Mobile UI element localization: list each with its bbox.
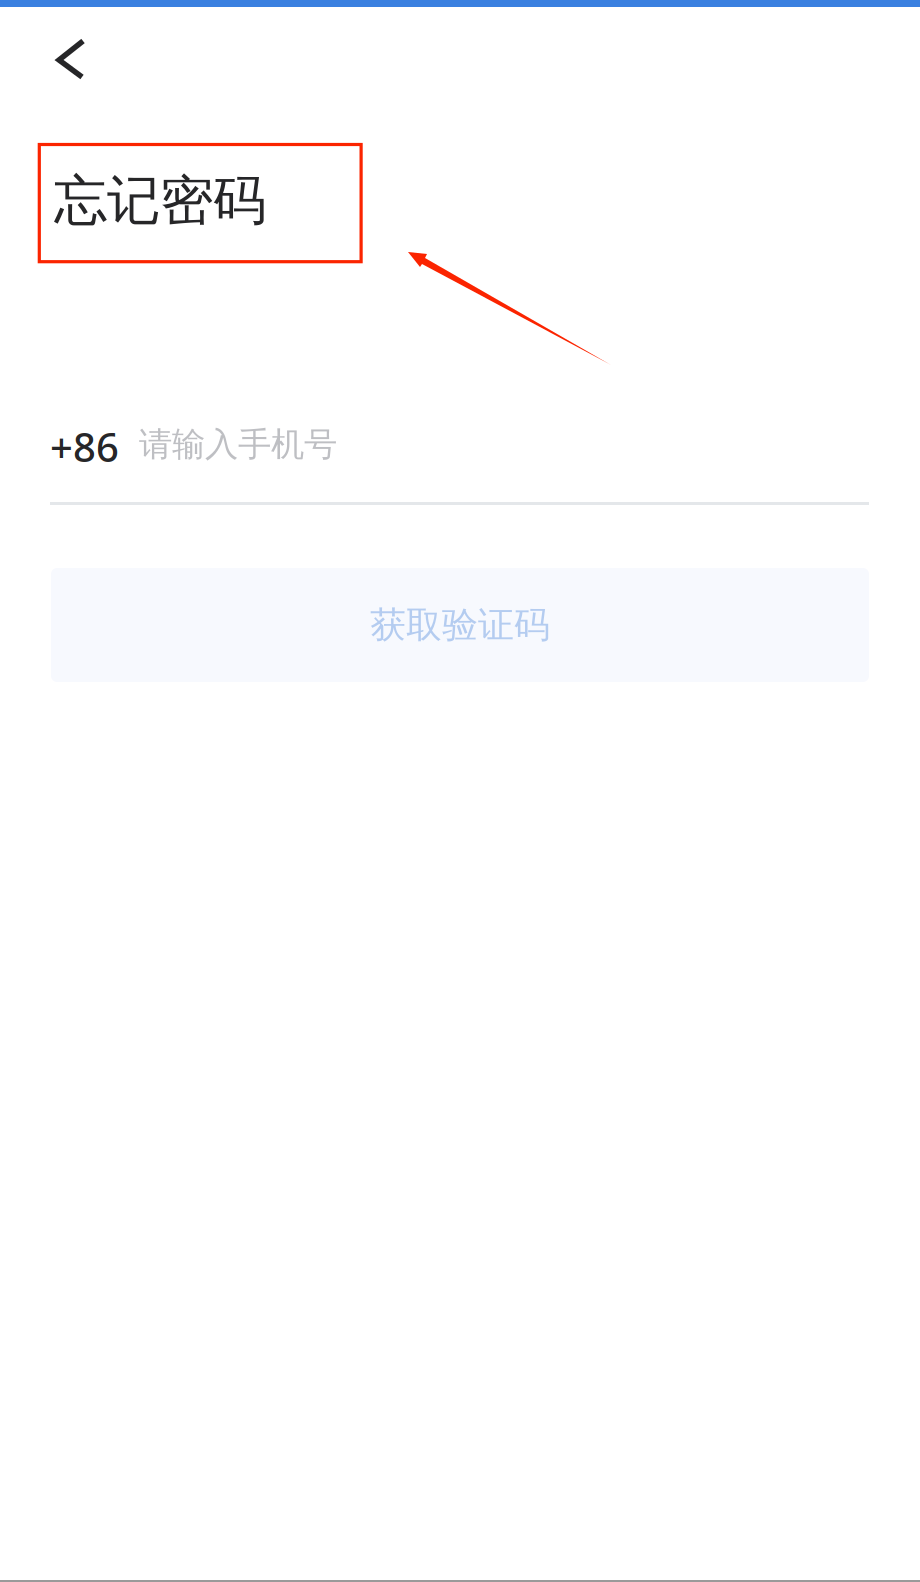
button[interactable]: +86 [50,420,119,473]
button[interactable]: 获取验证码 [51,568,869,682]
button[interactable]: 返回 [28,20,114,98]
staticText: 忘记密码 [54,168,266,233]
staticText: +86 [50,420,119,473]
staticText: 获取验证码 [370,603,550,647]
staticText: 请输入手机号 [139,424,337,465]
